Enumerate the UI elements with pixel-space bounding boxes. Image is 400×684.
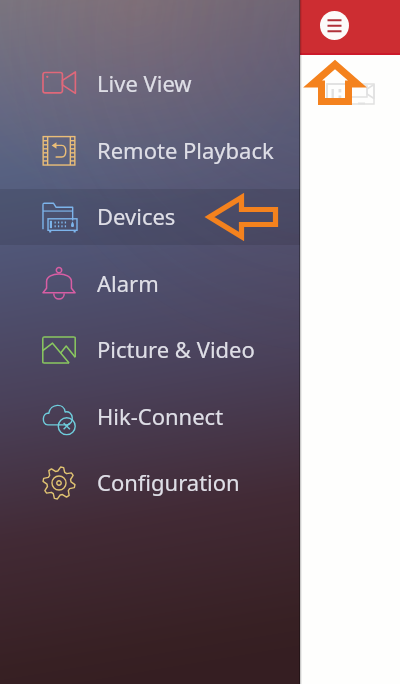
- button[interactable]: Picture & Video: [0, 322, 300, 378]
- button[interactable]: Configuration: [0, 455, 300, 511]
- staticText: Hik-Connect: [97, 401, 224, 431]
- button[interactable]: Devices: [0, 189, 300, 245]
- button[interactable]: Open navigation menu: [320, 11, 349, 40]
- staticText: Devices: [97, 201, 176, 231]
- staticText: Picture & Video: [97, 334, 255, 364]
- button[interactable]: Hik-Connect: [0, 389, 300, 445]
- staticText: Alarm: [97, 268, 159, 298]
- button[interactable]: Live View: [0, 56, 300, 112]
- staticText: Remote Playback: [97, 135, 274, 165]
- staticText: Live View: [97, 68, 192, 98]
- button[interactable]: Alarm: [0, 256, 300, 312]
- button[interactable]: Remote Playback: [0, 123, 300, 179]
- staticText: Configuration: [97, 467, 240, 497]
